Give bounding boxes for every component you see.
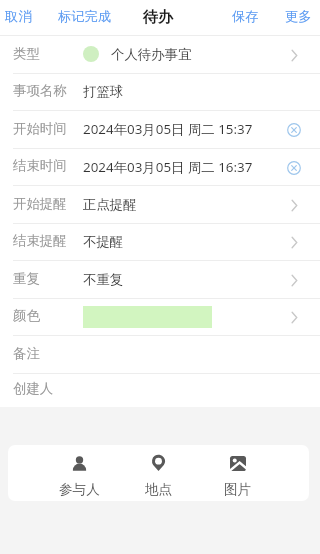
- staticText: 更多: [285, 8, 312, 25]
- staticText: 待办: [143, 8, 173, 27]
- staticText: 不提醒: [83, 233, 124, 250]
- button[interactable]: 图片: [198, 445, 277, 501]
- staticText: 结束提醒: [13, 232, 67, 249]
- button[interactable]: 事项名称: [0, 74, 320, 111]
- staticText: 图片: [224, 481, 252, 498]
- button[interactable]: 保存: [223, 4, 276, 33]
- staticText: 参与人: [59, 481, 100, 498]
- button[interactable]: 参与人: [40, 445, 119, 501]
- button[interactable]: 创建人: [0, 374, 320, 407]
- button[interactable]: 开始时间: [0, 111, 320, 149]
- staticText: 地点: [145, 481, 173, 498]
- button[interactable]: 取消: [0, 4, 42, 33]
- staticText: 正点提醒: [83, 196, 137, 213]
- staticText: 结束时间: [13, 157, 67, 174]
- button[interactable]: 备注: [0, 336, 320, 374]
- staticText: 事项名称: [13, 82, 67, 99]
- staticText: 保存: [232, 8, 259, 25]
- staticText: 2024年03月05日 周二 15:37: [83, 120, 253, 138]
- staticText: 打篮球: [83, 83, 124, 100]
- button[interactable]: 颜色: [0, 299, 320, 336]
- button[interactable]: 结束提醒: [0, 224, 320, 261]
- staticText: 备注: [13, 345, 40, 362]
- button[interactable]: 标记完成: [42, 4, 122, 33]
- button[interactable]: 结束时间: [0, 149, 320, 186]
- staticText: 取消: [5, 8, 32, 25]
- staticText: 类型: [13, 45, 40, 62]
- button[interactable]: 类型: [0, 36, 320, 74]
- staticText: 重复: [13, 270, 40, 287]
- staticText: 开始提醒: [13, 195, 67, 212]
- button[interactable]: 清除结束时间: [282, 156, 306, 180]
- button[interactable]: 清除开始时间: [282, 118, 306, 142]
- button[interactable]: 更多: [276, 4, 320, 33]
- staticText: 创建人: [13, 380, 54, 397]
- staticText: 个人待办事宜: [111, 46, 192, 63]
- staticText: 标记完成: [58, 8, 112, 25]
- button[interactable]: 重复: [0, 261, 320, 299]
- staticText: 开始时间: [13, 120, 67, 137]
- staticText: 不重复: [83, 271, 124, 288]
- staticText: 2024年03月05日 周二 16:37: [83, 158, 253, 176]
- button[interactable]: 地点: [119, 445, 198, 501]
- button[interactable]: 开始提醒: [0, 186, 320, 224]
- staticText: 颜色: [13, 307, 40, 324]
